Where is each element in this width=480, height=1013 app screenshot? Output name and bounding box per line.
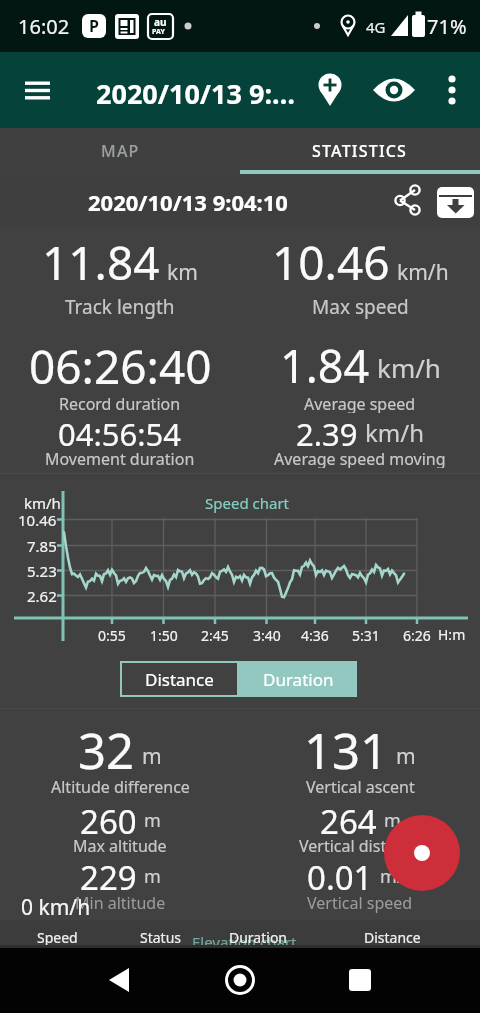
staticText: 0:55	[98, 626, 126, 645]
staticText: 2:45	[201, 626, 229, 645]
staticText: 16:02	[18, 13, 70, 40]
staticText: Track length	[65, 294, 175, 320]
staticText: km	[167, 258, 198, 287]
staticText: m	[396, 742, 416, 771]
button[interactable]	[434, 187, 474, 219]
button[interactable]	[306, 66, 354, 114]
button[interactable]: Duration	[221, 926, 296, 948]
staticText: Vertical ascent	[306, 776, 415, 798]
button[interactable]	[384, 815, 460, 891]
button[interactable]	[216, 956, 264, 1004]
staticText: km/h	[397, 258, 449, 287]
button[interactable]: STATISTICS	[240, 128, 480, 174]
staticText: Min altitude	[75, 892, 166, 914]
staticText: Max altitude	[73, 835, 167, 857]
button[interactable]: Distance	[120, 661, 239, 697]
button[interactable]	[434, 66, 474, 114]
staticText: 0.01	[307, 855, 373, 893]
staticText: 229	[80, 855, 137, 893]
staticText: 06:26:40	[29, 335, 212, 391]
button[interactable]	[336, 956, 384, 1004]
staticText: 5.23	[27, 561, 57, 581]
staticText: Max speed	[312, 294, 409, 320]
staticText: P	[89, 15, 99, 37]
staticText: Duration	[263, 668, 334, 691]
staticText: 32	[78, 717, 135, 779]
button[interactable]	[96, 956, 144, 1004]
staticText: 04:56:54	[58, 413, 182, 451]
staticText: Average speed moving	[274, 448, 446, 468]
staticText: 6:26	[403, 626, 431, 645]
staticText: 3:40	[253, 626, 281, 645]
button[interactable]: Distance	[355, 926, 430, 948]
staticText: Duration	[229, 928, 288, 947]
staticText: m	[144, 808, 161, 833]
button[interactable]	[13, 70, 61, 118]
staticText: 2020/10/13 9:…	[96, 75, 296, 112]
staticText: 7.85	[27, 536, 57, 556]
staticText: PAY	[152, 27, 165, 37]
staticText: STATISTICS	[312, 140, 408, 162]
staticText: Record duration	[59, 393, 181, 413]
staticText: 2020/10/13 9:04:10	[88, 187, 288, 217]
button[interactable]: MAP	[0, 128, 240, 174]
staticText: au	[154, 15, 167, 29]
button[interactable]: Duration	[239, 661, 357, 697]
staticText: m	[142, 742, 162, 771]
staticText: km/h	[365, 416, 425, 449]
staticText: 2.39	[296, 413, 358, 451]
staticText: 1:50	[150, 626, 178, 645]
staticText: H:m	[438, 625, 466, 644]
staticText: 131	[304, 717, 389, 779]
staticText: Average speed	[304, 393, 416, 413]
staticText: Movement duration	[45, 448, 195, 468]
button[interactable]	[384, 177, 432, 225]
staticText: MAP	[101, 140, 140, 162]
staticText: m/s	[380, 864, 413, 889]
staticText: 10.46	[272, 231, 390, 294]
button[interactable]: Speed	[20, 926, 95, 948]
staticText: Status	[140, 928, 182, 947]
staticText: 1.84	[280, 335, 370, 391]
staticText: m	[384, 808, 401, 833]
staticText: 4G	[366, 17, 386, 37]
staticText: m	[144, 864, 161, 889]
staticText: Speed chart	[205, 493, 290, 513]
staticText: Vertical speed	[307, 892, 413, 914]
staticText: Distance	[145, 668, 214, 691]
staticText: 71%	[427, 13, 467, 40]
staticText: 4:36	[301, 626, 329, 645]
staticText: 260	[80, 799, 137, 837]
staticText: Elevation chart	[192, 932, 297, 952]
staticText: 11.84	[42, 231, 160, 294]
staticText: Speed	[37, 928, 78, 947]
staticText: Altitude difference	[51, 776, 190, 798]
staticText: 2.62	[27, 586, 57, 606]
staticText: 0 km/h	[21, 893, 91, 922]
staticText: Distance	[364, 928, 421, 947]
staticText: km/h	[377, 350, 441, 385]
staticText: Vertical distance	[299, 835, 422, 857]
staticText: km/h	[24, 493, 61, 513]
staticText: 264	[320, 799, 377, 837]
button[interactable]: Status	[123, 926, 198, 948]
staticText: 5:31	[352, 626, 380, 645]
staticText: 10.46	[18, 510, 57, 530]
button[interactable]	[370, 66, 418, 114]
